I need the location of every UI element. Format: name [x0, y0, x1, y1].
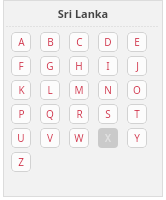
- staticText: S: [105, 107, 111, 121]
- staticText: X: [105, 131, 111, 145]
- button[interactable]: D: [98, 32, 118, 52]
- button[interactable]: Z: [11, 152, 31, 172]
- button[interactable]: G: [40, 56, 60, 76]
- staticText: Y: [134, 131, 140, 145]
- staticText: N: [104, 83, 112, 97]
- button[interactable]: V: [40, 128, 60, 148]
- button[interactable]: N: [98, 80, 118, 100]
- button[interactable]: C: [69, 32, 89, 52]
- button[interactable]: R: [69, 104, 89, 124]
- staticText: D: [104, 35, 112, 49]
- button[interactable]: H: [69, 56, 89, 76]
- staticText: M: [74, 83, 84, 97]
- button[interactable]: I: [98, 56, 118, 76]
- staticText: Sri Lanka: [3, 6, 163, 21]
- staticText: T: [134, 107, 140, 121]
- staticText: R: [76, 107, 83, 121]
- staticText: O: [133, 83, 141, 97]
- button[interactable]: B: [40, 32, 60, 52]
- staticText: H: [75, 59, 83, 73]
- button[interactable]: T: [127, 104, 147, 124]
- staticText: U: [17, 131, 25, 145]
- staticText: W: [74, 131, 84, 145]
- button[interactable]: W: [69, 128, 89, 148]
- staticText: L: [47, 83, 53, 97]
- staticText: J: [136, 59, 139, 73]
- button[interactable]: U: [11, 128, 31, 148]
- staticText: A: [18, 35, 25, 49]
- button[interactable]: F: [11, 56, 31, 76]
- button[interactable]: A: [11, 32, 31, 52]
- button[interactable]: J: [127, 56, 147, 76]
- staticText: K: [18, 83, 25, 97]
- button[interactable]: M: [69, 80, 89, 100]
- button[interactable]: Q: [40, 104, 60, 124]
- staticText: G: [46, 59, 54, 73]
- button[interactable]: P: [11, 104, 31, 124]
- staticText: V: [47, 131, 53, 145]
- staticText: P: [18, 107, 25, 121]
- staticText: F: [18, 59, 24, 73]
- staticText: B: [47, 35, 54, 49]
- staticText: E: [134, 35, 140, 49]
- button[interactable]: Y: [127, 128, 147, 148]
- button[interactable]: K: [11, 80, 31, 100]
- staticText: Z: [18, 155, 24, 169]
- staticText: I: [106, 59, 110, 73]
- staticText: Q: [46, 107, 54, 121]
- button[interactable]: L: [40, 80, 60, 100]
- button[interactable]: S: [98, 104, 118, 124]
- button[interactable]: E: [127, 32, 147, 52]
- button[interactable]: X: [98, 128, 118, 148]
- staticText: C: [76, 35, 83, 49]
- button[interactable]: O: [127, 80, 147, 100]
